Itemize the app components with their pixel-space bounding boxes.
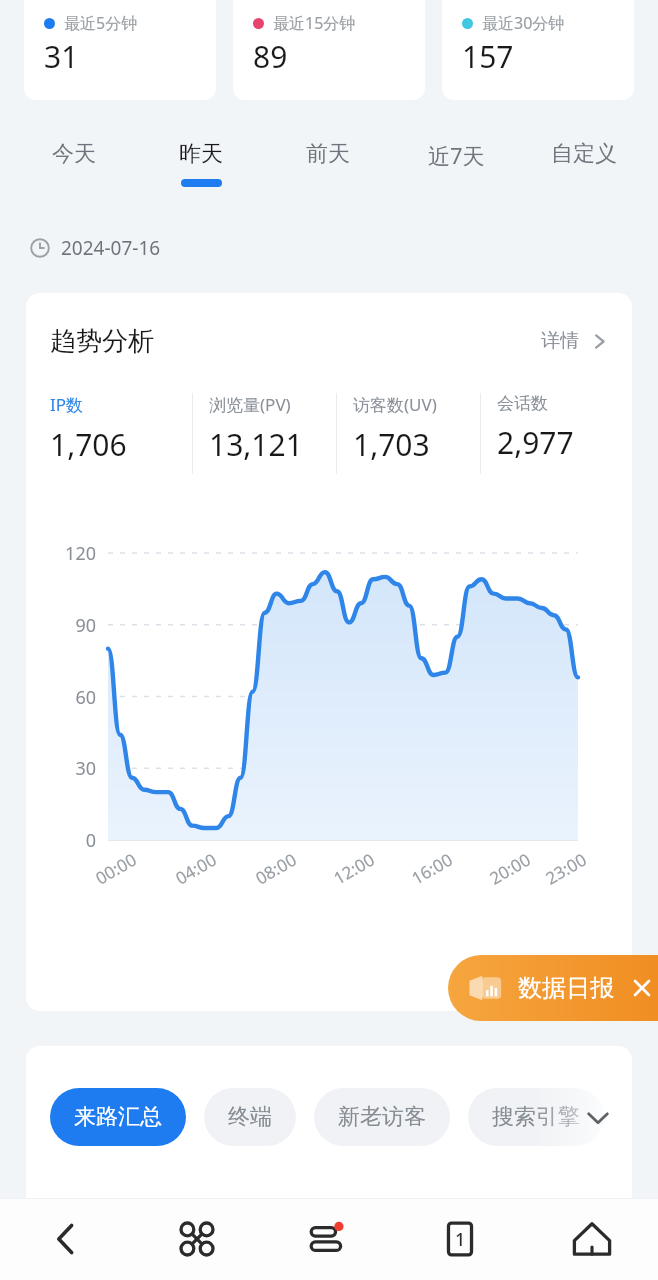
staticText: 2,977 [497, 422, 574, 463]
button[interactable]: 最近15分钟 [233, 0, 425, 100]
staticText: IP数 [50, 393, 84, 416]
staticText: 来路汇总 [74, 1103, 162, 1131]
button[interactable]: 数据日报 [448, 955, 658, 1021]
staticText: 89 [253, 36, 288, 77]
button[interactable]: More filters [580, 1100, 616, 1136]
button[interactable]: 昨天 [137, 130, 264, 210]
staticText: 08:00 [251, 847, 301, 889]
staticText: 2024-07-16 [61, 235, 161, 261]
button[interactable]: Close [628, 974, 656, 1002]
button[interactable]: 今天 [10, 130, 137, 210]
staticText: 12:00 [329, 847, 379, 889]
staticText: 1,706 [50, 424, 127, 465]
button[interactable]: 访客数(UV) [337, 393, 480, 483]
staticText: 访客数(UV) [353, 393, 437, 416]
button[interactable]: 前天 [264, 130, 392, 210]
staticText: 157 [462, 36, 514, 77]
staticText: 00:00 [91, 847, 141, 889]
staticText: 0 [85, 828, 96, 853]
staticText: 详情 [541, 329, 579, 353]
button[interactable]: Menu [262, 1198, 394, 1280]
staticText: 23:00 [541, 847, 591, 889]
staticText: 120 [65, 541, 96, 566]
staticText: 最近30分钟 [482, 12, 565, 34]
staticText: 31 [44, 36, 79, 77]
staticText: 90 [75, 613, 96, 638]
staticText: 60 [75, 685, 96, 710]
staticText: 浏览量(PV) [209, 393, 291, 416]
button[interactable]: 会话数 [481, 393, 624, 483]
staticText: 最近15分钟 [273, 12, 356, 34]
staticText: 近7天 [428, 140, 485, 170]
staticText: 趋势分析 [50, 325, 154, 358]
button[interactable]: 自定义 [520, 130, 648, 210]
button[interactable]: Home [526, 1198, 658, 1280]
staticText: 20:00 [485, 847, 535, 889]
staticText: 终端 [228, 1103, 272, 1131]
staticText: 搜索引擎 [492, 1103, 580, 1131]
staticText: 16:00 [407, 847, 457, 889]
staticText: 30 [75, 756, 96, 781]
staticText: 前天 [306, 140, 350, 168]
button[interactable]: Back [0, 1198, 131, 1280]
staticText: 会话数 [497, 393, 548, 414]
staticText: 04:00 [171, 847, 221, 889]
button[interactable]: 来路汇总 [50, 1088, 186, 1146]
staticText: 今天 [52, 140, 96, 168]
button[interactable]: 浏览量(PV) [193, 393, 336, 483]
button[interactable]: 近7天 [392, 130, 520, 210]
staticText: 最近5分钟 [64, 12, 138, 34]
button[interactable]: 新老访客 [314, 1088, 450, 1146]
button[interactable]: 详情 [541, 329, 608, 353]
button[interactable]: 最近30分钟 [442, 0, 634, 100]
staticText: 1 [455, 1227, 466, 1252]
staticText: 数据日报 [518, 973, 614, 1003]
button[interactable]: IP数 [50, 393, 192, 483]
button[interactable]: 2024-07-16 [30, 228, 161, 268]
button[interactable]: 搜索引擎 [468, 1088, 604, 1146]
staticText: 1,703 [353, 424, 430, 465]
staticText: 自定义 [551, 140, 617, 168]
button[interactable]: 终端 [204, 1088, 296, 1146]
staticText: 新老访客 [338, 1103, 426, 1131]
staticText: 昨天 [179, 140, 223, 168]
staticText: 13,121 [209, 424, 303, 465]
button[interactable]: 最近5分钟 [24, 0, 216, 100]
button[interactable]: Tabs [394, 1198, 526, 1280]
button[interactable]: Windows [131, 1198, 262, 1280]
